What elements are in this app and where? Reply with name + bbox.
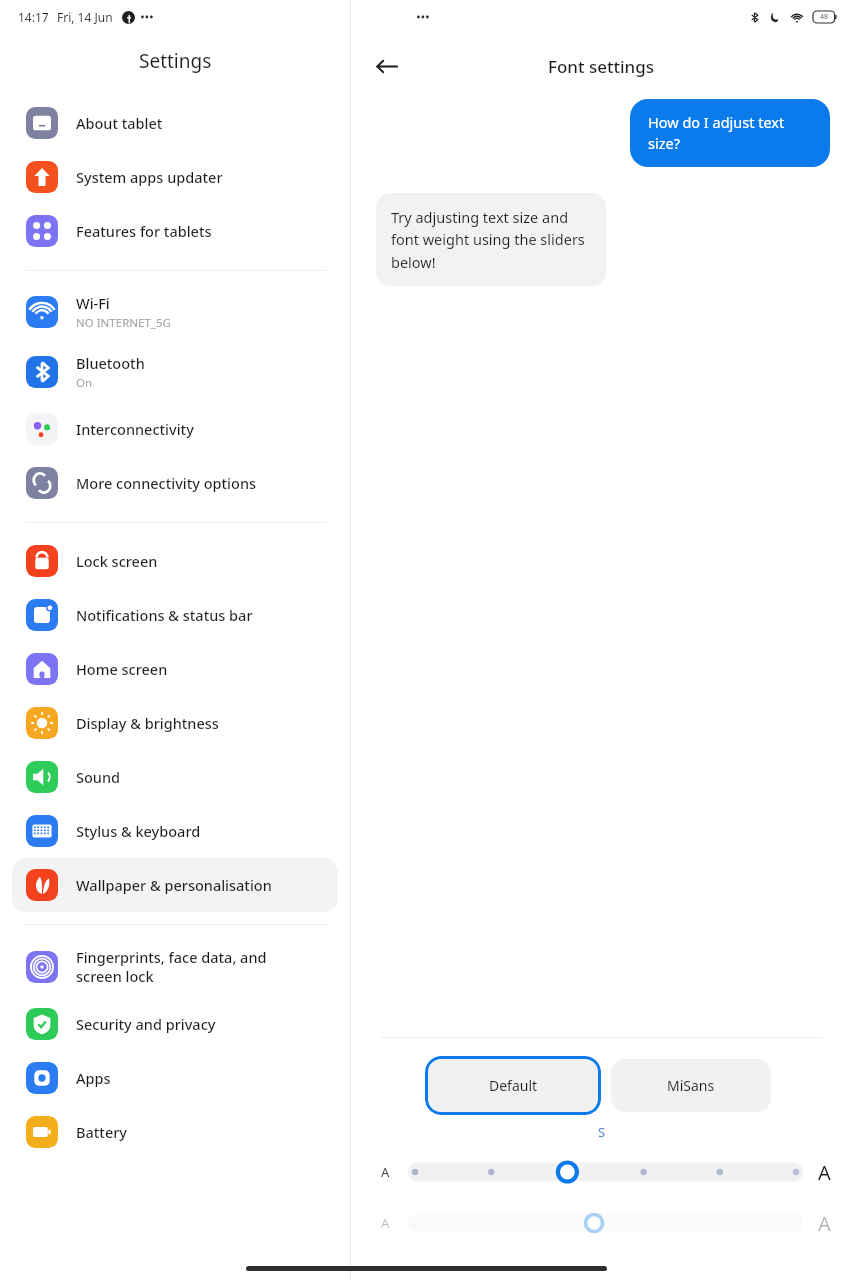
button[interactable]: Fingerprints, face data, and screen lock — [12, 936, 338, 997]
staticText: Battery — [76, 1122, 127, 1142]
button[interactable]: Sound — [12, 750, 338, 804]
button[interactable]: Font weight — [408, 1208, 803, 1238]
button[interactable]: Security and privacy — [12, 997, 338, 1051]
staticText: A — [381, 1163, 390, 1181]
staticText: Apps — [76, 1068, 111, 1088]
staticText: Home screen — [76, 659, 168, 679]
staticText: Fri, 14 Jun — [57, 9, 113, 25]
staticText: 48 — [820, 12, 829, 22]
button[interactable]: How do I adjust text size? — [630, 99, 830, 167]
button[interactable]: About tablet — [12, 96, 338, 150]
button[interactable]: Notifications & status bar — [12, 588, 338, 642]
button[interactable]: More connectivity options — [12, 456, 338, 510]
button[interactable]: Try adjusting text size and font weight … — [376, 193, 606, 286]
staticText: More connectivity options — [76, 473, 257, 493]
button[interactable]: Battery — [12, 1105, 338, 1159]
staticText: Features for tablets — [76, 221, 212, 241]
button[interactable]: Text size — [408, 1157, 803, 1187]
button[interactable]: Features for tablets — [12, 204, 338, 258]
staticText: 14:17 — [18, 9, 49, 25]
staticText: NO INTERNET_5G — [76, 315, 171, 331]
staticText: Notifications & status bar — [76, 605, 253, 625]
button[interactable]: Interconnectivity — [12, 402, 338, 456]
staticText: Font settings — [548, 55, 655, 78]
staticText: Wallpaper & personalisation — [76, 875, 272, 895]
staticText: System apps updater — [76, 167, 223, 187]
button[interactable]: Wi-Fi — [12, 282, 338, 342]
button[interactable]: System apps updater — [12, 150, 338, 204]
button[interactable]: MiSans — [611, 1059, 771, 1112]
button[interactable]: Stylus & keyboard — [12, 804, 338, 858]
staticText: Lock screen — [76, 551, 158, 571]
staticText: MiSans — [667, 1076, 715, 1095]
button[interactable]: Lock screen — [12, 534, 338, 588]
staticText: Security and privacy — [76, 1014, 216, 1034]
staticText: A — [818, 1210, 831, 1237]
staticText: Sound — [76, 767, 121, 787]
button[interactable]: Back — [369, 48, 405, 84]
staticText: How do I adjust text size? — [648, 112, 812, 154]
staticText: Stylus & keyboard — [76, 821, 201, 841]
staticText: Wi-Fi — [76, 293, 110, 313]
staticText: On — [76, 375, 93, 391]
button[interactable]: Display & brightness — [12, 696, 338, 750]
button[interactable]: Apps — [12, 1051, 338, 1105]
staticText: Bluetooth — [76, 353, 145, 373]
button[interactable]: Wallpaper & personalisation — [12, 858, 338, 912]
staticText: Interconnectivity — [76, 419, 194, 439]
staticText: A — [381, 1214, 390, 1232]
button[interactable]: Default — [425, 1056, 601, 1115]
button[interactable]: Home screen — [12, 642, 338, 696]
button[interactable]: Bluetooth — [12, 342, 338, 402]
staticText: Fingerprints, face data, and screen lock — [76, 947, 267, 986]
staticText: Default — [489, 1076, 538, 1095]
staticText: S — [598, 1123, 606, 1141]
staticText: Settings — [139, 48, 212, 74]
staticText: Try adjusting text size and font weight … — [391, 207, 591, 272]
staticText: Display & brightness — [76, 713, 219, 733]
staticText: About tablet — [76, 113, 163, 133]
staticText: A — [818, 1159, 831, 1186]
